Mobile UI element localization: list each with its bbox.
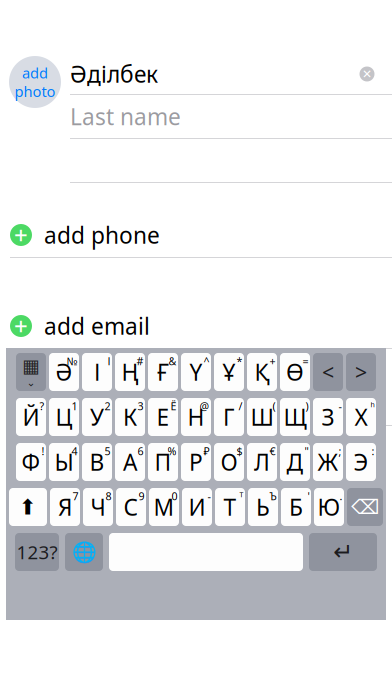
staticText: 5	[104, 444, 110, 458]
button[interactable]: <	[313, 353, 343, 391]
button[interactable]: ^	[181, 353, 211, 391]
staticText: +	[14, 310, 28, 342]
button[interactable]: Delete	[347, 488, 383, 526]
staticText: )	[305, 399, 308, 413]
button[interactable]: *	[214, 353, 244, 391]
button[interactable]: -	[182, 488, 212, 526]
button[interactable]: Space	[109, 533, 303, 571]
button[interactable]: 3	[115, 398, 145, 436]
staticText: Ь	[256, 492, 270, 522]
staticText: >	[355, 358, 367, 386]
staticText: Ъ	[269, 489, 276, 503]
staticText: -	[338, 399, 341, 413]
button[interactable]: Done	[314, 93, 384, 135]
staticText: New Contact	[132, 99, 272, 129]
staticText: Х	[354, 402, 367, 432]
button[interactable]: 1	[49, 398, 79, 436]
button[interactable]: -	[313, 398, 343, 436]
button[interactable]: 0	[149, 488, 179, 526]
staticText: Ң	[121, 357, 138, 387]
button[interactable]: +	[0, 304, 392, 348]
staticText: Ж	[317, 447, 338, 477]
button[interactable]: І	[82, 353, 112, 391]
staticText: Б	[289, 492, 303, 522]
staticText: %	[167, 444, 176, 458]
staticText: ✕	[362, 67, 372, 81]
staticText: К	[123, 402, 137, 432]
button[interactable]: /	[214, 398, 244, 436]
staticText: ᵀ	[239, 489, 243, 503]
button[interactable]: 4	[49, 443, 79, 481]
button[interactable]: "	[280, 443, 310, 481]
staticText: Default	[121, 395, 200, 425]
staticText: ʰ	[370, 399, 374, 413]
button[interactable]: Cancel	[8, 93, 91, 135]
button[interactable]: Ъ	[248, 488, 278, 526]
button[interactable]: +	[0, 213, 392, 257]
button[interactable]: ;	[313, 443, 343, 481]
staticText: ^	[203, 354, 209, 368]
button[interactable]: 5	[82, 443, 112, 481]
staticText: №	[66, 354, 77, 368]
staticText: Ү	[189, 357, 202, 387]
staticText: @	[199, 399, 209, 413]
button[interactable]: Shift	[9, 488, 47, 526]
button[interactable]: #	[115, 353, 145, 391]
staticText: #	[136, 354, 143, 368]
button[interactable]: :	[346, 443, 376, 481]
staticText: Э	[353, 447, 368, 477]
button[interactable]: =	[280, 353, 310, 391]
staticText: !	[41, 444, 44, 458]
staticText: П	[154, 447, 171, 477]
button[interactable]: 123?	[15, 533, 59, 571]
button[interactable]: $	[214, 443, 244, 481]
button[interactable]: 8	[83, 488, 113, 526]
staticText: ⬆	[19, 495, 37, 519]
button[interactable]: )	[280, 398, 310, 436]
button[interactable]: &	[148, 353, 178, 391]
button[interactable]: Next keyboard	[65, 533, 103, 571]
staticText: Ц	[55, 402, 72, 432]
button[interactable]: ₽	[181, 443, 211, 481]
button[interactable]: %	[148, 443, 178, 481]
button[interactable]: Add photo	[0, 54, 70, 110]
button[interactable]: 9	[116, 488, 146, 526]
staticText: 7	[72, 489, 78, 503]
button[interactable]: ↵	[309, 533, 377, 571]
button[interactable]: ᵀ	[215, 488, 245, 526]
staticText: Я	[58, 492, 72, 522]
staticText: 6	[137, 444, 143, 458]
button[interactable]: ?	[16, 398, 46, 436]
button[interactable]: Ringtone	[0, 395, 392, 425]
button[interactable]: 7	[50, 488, 80, 526]
staticText: Ә	[55, 357, 72, 387]
button[interactable]: Hide keyboard	[16, 353, 46, 391]
staticText: М	[153, 492, 174, 522]
button[interactable]: 2	[82, 398, 112, 436]
button[interactable]: >	[346, 353, 376, 391]
staticText: ᯤ	[61, 76, 78, 96]
button[interactable]: +	[247, 353, 277, 391]
button[interactable]: (	[247, 398, 277, 436]
button[interactable]: №	[49, 353, 79, 391]
button[interactable]: Ё	[148, 398, 178, 436]
button[interactable]: '	[281, 488, 311, 526]
staticText: Ш	[250, 402, 273, 432]
button[interactable]: ʰ	[346, 398, 376, 436]
staticText: Ы	[54, 447, 73, 477]
staticText: "	[304, 444, 308, 458]
button[interactable]: @	[181, 398, 211, 436]
staticText: .	[339, 489, 342, 503]
button[interactable]: 6	[115, 443, 145, 481]
button[interactable]: Clear text	[354, 61, 380, 87]
staticText: ▦	[22, 355, 40, 377]
staticText: add email	[44, 311, 150, 341]
button[interactable]: .	[314, 488, 344, 526]
staticText: photo	[14, 81, 55, 101]
staticText: Т	[223, 492, 236, 522]
button[interactable]: €	[247, 443, 277, 481]
staticText: Ч	[90, 492, 105, 522]
button[interactable]: !	[16, 443, 46, 481]
